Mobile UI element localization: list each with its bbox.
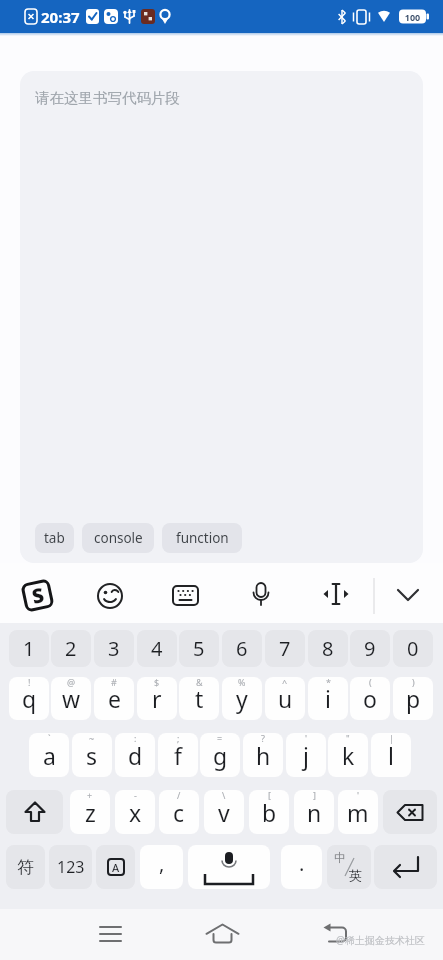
button[interactable]: s [72,733,112,777]
button[interactable]: 中 [327,845,371,889]
button[interactable]: console [82,523,154,553]
button[interactable]: p [393,677,433,720]
button[interactable]: d [115,733,155,777]
staticText: t [195,683,204,714]
button[interactable]: 请在这里书写代码片段 [20,71,423,563]
staticText: 符 [17,857,34,878]
staticText: | [389,733,394,744]
button[interactable]: 符 [6,845,45,889]
staticText: w [62,683,81,714]
staticText: l [388,740,394,771]
staticText: 7 [279,635,291,662]
staticText: i [325,683,331,714]
button[interactable] [0,0,443,960]
staticText: a [43,740,56,771]
button[interactable]: j [286,733,326,777]
button[interactable]: v [204,790,244,834]
button[interactable]: 5 [179,630,219,667]
button[interactable]: 123 [49,845,92,889]
button[interactable]: i [308,677,348,720]
staticText: + [87,790,93,801]
button[interactable]: 1 [9,630,49,667]
staticText: 请在这里书写代码片段 [35,89,180,107]
button[interactable]: , [140,845,183,889]
button[interactable]: l [371,733,411,777]
button[interactable]: m [338,790,378,834]
button[interactable]: 4 [137,630,177,667]
staticText: z [85,797,96,828]
staticText: @ [67,677,76,688]
button[interactable]: o [350,677,390,720]
staticText: j [303,740,309,771]
staticText: . [299,850,305,877]
button[interactable]: A [96,845,135,889]
button[interactable]: 6 [222,630,262,667]
button[interactable]: e [94,677,134,720]
staticText: ~ [89,733,95,744]
staticText: - [134,790,137,801]
button[interactable]: 8 [308,630,348,667]
button[interactable]: g [200,733,240,777]
button[interactable]: c [159,790,199,834]
staticText: x [129,797,142,828]
button[interactable]: r [137,677,177,720]
staticText: 3 [108,635,120,662]
button[interactable]: w [51,677,91,720]
staticText: v [218,797,230,828]
button[interactable] [188,845,270,889]
button[interactable]: S [20,578,55,613]
button[interactable]: t [179,677,219,720]
button[interactable]: u [265,677,305,720]
staticText: 1 [23,635,35,662]
button[interactable]: h [243,733,283,777]
staticText: tab [44,529,65,547]
staticText: [ [268,790,271,801]
button[interactable] [374,845,437,889]
staticText: ! [28,677,31,688]
staticText: : [134,733,137,744]
button[interactable]: 7 [265,630,305,667]
staticText: $ [154,677,160,688]
button[interactable]: b [249,790,289,834]
staticText: & [196,677,203,688]
button[interactable]: . [281,845,322,889]
staticText: ^ [282,677,288,688]
button[interactable]: f [158,733,198,777]
staticText: 4 [151,635,163,662]
button[interactable] [92,916,129,952]
staticText: 9 [364,635,376,662]
staticText: p [406,683,421,714]
staticText: = [217,733,223,744]
button[interactable]: tab [35,523,74,553]
button[interactable]: k [328,733,368,777]
button[interactable] [6,790,63,834]
staticText: A [112,860,120,875]
button[interactable]: q [9,677,49,720]
button[interactable]: 3 [94,630,134,667]
staticText: ) [412,677,415,688]
staticText: % [238,677,246,688]
button[interactable]: function [162,523,242,553]
staticText: \ [222,790,226,801]
staticText: s [86,740,98,771]
staticText: n [307,797,322,828]
button[interactable] [383,790,437,834]
button[interactable] [318,916,355,952]
button[interactable]: 2 [51,630,91,667]
button[interactable]: z [70,790,110,834]
staticText: h [256,740,271,771]
button[interactable]: x [115,790,155,834]
button[interactable]: a [29,733,69,777]
staticText: ` [48,733,51,744]
button[interactable]: y [222,677,262,720]
staticText: b [262,797,277,828]
staticText: console [94,529,143,547]
button[interactable]: 9 [350,630,390,667]
button[interactable]: n [294,790,334,834]
staticText: ; [177,733,180,744]
staticText: 中 [334,850,346,865]
button[interactable]: 0 [393,630,433,667]
staticText: y [236,683,248,714]
staticText: q [22,683,37,714]
button[interactable] [204,916,241,952]
